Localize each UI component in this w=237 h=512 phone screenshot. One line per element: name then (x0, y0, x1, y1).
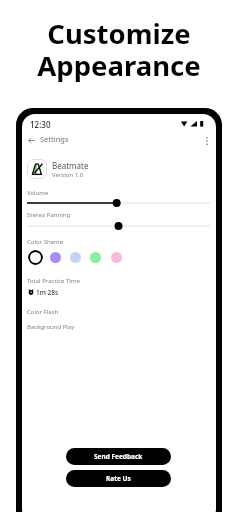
staticText: Color Sheme (27, 238, 64, 246)
staticText: Beatmate (52, 160, 89, 171)
staticText: Send Feedback (94, 452, 143, 461)
staticText: Total Practice Time (27, 277, 80, 285)
button[interactable]: Color option (111, 252, 122, 263)
button[interactable]: Color Flash (22, 306, 215, 317)
staticText: Stereo Panning (27, 211, 71, 219)
staticText: 1m 28s (36, 288, 59, 297)
button[interactable]: Color option (50, 252, 61, 263)
button[interactable]: Color option (90, 252, 101, 263)
staticText: Color Flash (27, 308, 59, 316)
button[interactable]: Background Play (22, 321, 215, 332)
staticText: Appearance (37, 47, 201, 84)
button[interactable]: Back (24, 133, 38, 147)
button[interactable]: More options (200, 134, 214, 148)
staticText: Version 1.0 (52, 171, 84, 179)
staticText: Background Play (27, 323, 75, 331)
button[interactable]: Send Feedback (66, 448, 171, 465)
staticText: 12:30 (30, 119, 51, 130)
button[interactable]: Color option (70, 252, 81, 263)
staticText: Settings (40, 134, 69, 144)
staticText: Rate Us (106, 474, 131, 483)
button[interactable]: Default color (28, 250, 43, 265)
staticText: Customize (47, 15, 191, 52)
staticText: Volume (27, 189, 49, 197)
button[interactable]: Rate Us (66, 470, 171, 487)
